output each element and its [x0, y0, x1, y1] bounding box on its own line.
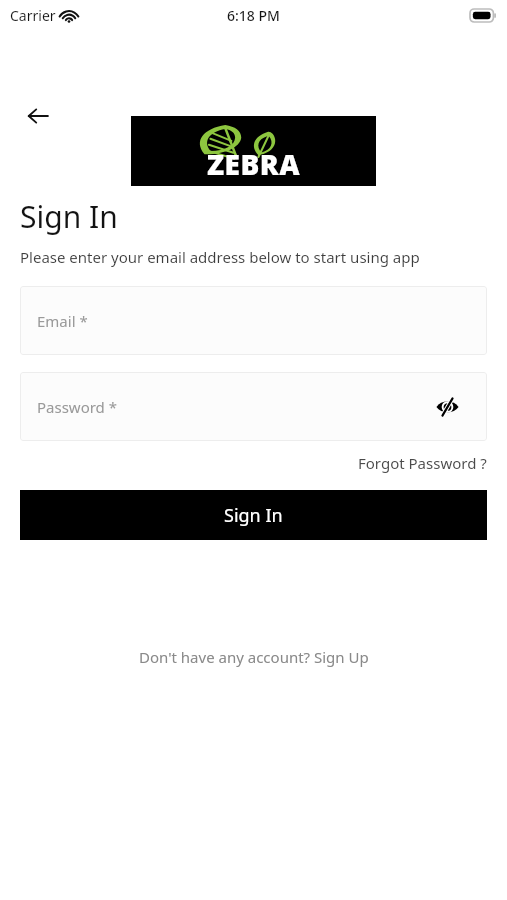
button[interactable]: Back	[18, 96, 58, 136]
staticText: Email *	[37, 311, 88, 331]
staticText: Please enter your email address below to…	[20, 247, 420, 267]
button[interactable]: Sign In	[20, 490, 487, 540]
staticText: ZEBRA	[207, 145, 301, 183]
button[interactable]: Show password	[433, 393, 461, 421]
staticText: Sign In	[224, 503, 283, 528]
staticText: Forgot Password ?	[358, 453, 487, 473]
button[interactable]: Email *	[20, 286, 487, 355]
staticText: Password *	[37, 397, 118, 417]
staticText: Don't have any account? Sign Up	[139, 647, 369, 667]
staticText: Sign In	[20, 196, 118, 237]
button[interactable]: Forgot Password ?	[358, 449, 487, 477]
button[interactable]: Don't have any account? Sign Up	[131, 641, 377, 673]
button[interactable]: Password *	[20, 372, 487, 441]
staticText: Carrier	[10, 6, 56, 25]
staticText: 6:18 PM	[227, 6, 280, 25]
